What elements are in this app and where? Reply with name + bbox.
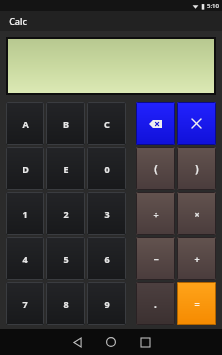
staticText: .: [154, 297, 157, 311]
staticText: D: [22, 163, 29, 175]
staticText: ): [195, 162, 199, 176]
button[interactable]: ×: [177, 192, 216, 235]
button[interactable]: 5: [46, 237, 85, 280]
button[interactable]: ÷: [136, 192, 175, 235]
staticText: (: [154, 162, 158, 176]
staticText: C: [104, 118, 110, 130]
button[interactable]: 1: [6, 192, 44, 235]
button[interactable]: ): [177, 147, 216, 190]
button[interactable]: 7: [6, 282, 44, 325]
button[interactable]: 3: [87, 192, 126, 235]
button[interactable]: E: [46, 147, 85, 190]
staticText: 9: [104, 298, 110, 310]
button[interactable]: B: [46, 102, 85, 145]
button[interactable]: 9: [87, 282, 126, 325]
staticText: 7: [22, 298, 28, 310]
staticText: −: [153, 253, 159, 265]
staticText: 4: [22, 253, 28, 265]
button[interactable]: (: [136, 147, 175, 190]
staticText: 5:10: [207, 2, 219, 10]
button[interactable]: Recent apps: [128, 329, 162, 355]
button[interactable]: .: [136, 282, 175, 325]
staticText: 0: [104, 163, 110, 175]
staticText: 3: [104, 208, 110, 220]
staticText: ÷: [153, 208, 159, 220]
button[interactable]: Back: [60, 329, 94, 355]
button[interactable]: 8: [46, 282, 85, 325]
button[interactable]: 2: [46, 192, 85, 235]
button[interactable]: 0: [87, 147, 126, 190]
staticText: A: [22, 118, 29, 130]
staticText: E: [63, 163, 69, 175]
button[interactable]: Home: [94, 329, 128, 355]
staticText: 2: [63, 208, 69, 220]
staticText: =: [194, 298, 200, 310]
button[interactable]: −: [136, 237, 175, 280]
staticText: B: [63, 118, 69, 130]
button[interactable]: A: [6, 102, 44, 145]
staticText: 6: [104, 253, 110, 265]
button[interactable]: Clear: [177, 102, 216, 145]
staticText: Calc: [9, 15, 27, 27]
button[interactable]: =: [177, 282, 216, 325]
button[interactable]: 6: [87, 237, 126, 280]
staticText: 5: [63, 253, 69, 265]
staticText: +: [194, 253, 200, 265]
button[interactable]: C: [87, 102, 126, 145]
button[interactable]: D: [6, 147, 44, 190]
staticText: 8: [63, 298, 69, 310]
staticText: ×: [194, 208, 200, 220]
button[interactable]: +: [177, 237, 216, 280]
button[interactable]: Backspace: [136, 102, 175, 145]
button[interactable]: 4: [6, 237, 44, 280]
staticText: 1: [22, 208, 28, 220]
